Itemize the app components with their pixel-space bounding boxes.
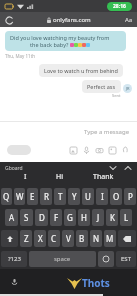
button[interactable]: U — [82, 188, 94, 205]
button[interactable]: V — [62, 230, 74, 247]
button[interactable]: Space — [29, 251, 96, 267]
staticText: J — [97, 212, 100, 223]
staticText: P — [128, 191, 133, 202]
staticText: Did you love watching my beauty from — [10, 34, 110, 41]
button[interactable]: J — [92, 209, 104, 226]
button[interactable]: C — [48, 230, 60, 247]
staticText: T — [58, 191, 63, 202]
button[interactable]: ?123 — [1, 251, 27, 267]
button[interactable]: Reload page — [3, 14, 15, 26]
button[interactable]: Camera — [95, 146, 104, 155]
button[interactable]: G — [64, 209, 76, 226]
staticText: ?123 — [8, 255, 21, 263]
staticText: E — [30, 191, 35, 202]
staticText: Z — [24, 233, 29, 244]
button[interactable]: E — [27, 188, 38, 205]
staticText: Sent — [112, 93, 121, 98]
button[interactable]: Type a message — [0, 128, 137, 136]
staticText: H — [81, 212, 87, 223]
staticText: Aa — [125, 16, 133, 24]
button[interactable]: Love to watch u from behind — [39, 64, 123, 77]
button[interactable]: W — [14, 188, 25, 205]
button[interactable]: Q — [1, 188, 12, 205]
staticText: onlyfans.com — [53, 16, 91, 24]
button[interactable]: Z — [20, 230, 32, 247]
staticText: Thank — [93, 172, 114, 182]
button[interactable]: H — [78, 209, 90, 226]
staticText: space — [54, 255, 71, 263]
staticText: 28:16 — [113, 3, 126, 10]
staticText: K — [110, 212, 115, 223]
button[interactable]: X — [34, 230, 46, 247]
button[interactable]: Did you love watching my beauty from — [5, 31, 126, 51]
staticText: L — [124, 212, 129, 223]
staticText: Perfect ass — [87, 83, 116, 90]
staticText: U — [85, 191, 91, 202]
button[interactable]: Photos — [108, 146, 117, 155]
button[interactable]: Hi — [50, 170, 69, 184]
staticText: Y — [72, 191, 77, 202]
staticText: S — [24, 212, 29, 223]
button[interactable]: I — [96, 188, 108, 205]
button[interactable]: Microphone — [82, 146, 91, 155]
button[interactable]: S — [20, 209, 33, 226]
staticText: Thu, May 11th — [5, 53, 36, 59]
button[interactable]: K — [106, 209, 118, 226]
staticText: Q — [3, 191, 10, 202]
button[interactable]: Backspace — [118, 230, 136, 247]
button[interactable]: onlyfans.com — [47, 16, 91, 24]
staticText: Gboard — [5, 165, 23, 172]
button[interactable]: A — [5, 209, 18, 226]
button[interactable]: Attach file — [121, 146, 130, 155]
staticText: G — [67, 212, 73, 223]
staticText: the back baby? — [30, 41, 70, 48]
button[interactable]: Perfect ass — [82, 80, 121, 93]
button[interactable]: O — [110, 188, 122, 205]
button[interactable]: N — [90, 230, 102, 247]
staticText: N — [93, 233, 100, 244]
staticText: R — [44, 191, 49, 202]
staticText: F — [54, 212, 59, 223]
staticText: M — [106, 233, 114, 244]
button[interactable]: Expand suggestions — [123, 163, 133, 173]
staticText: Love to watch u from behind — [44, 67, 118, 74]
button[interactable]: 28:16 — [107, 2, 132, 11]
button[interactable]: Shift — [1, 230, 18, 247]
button[interactable]: EST — [116, 251, 136, 267]
button[interactable]: T — [54, 188, 66, 205]
button[interactable]: I — [18, 170, 33, 184]
button[interactable]: Y — [68, 188, 80, 205]
button[interactable]: Emoji — [98, 251, 114, 267]
staticText: EST — [121, 255, 131, 263]
button[interactable]: D — [35, 209, 48, 226]
button[interactable]: F — [50, 209, 62, 226]
staticText: JR — [126, 86, 130, 91]
button[interactable]: M — [104, 230, 116, 247]
staticText: X — [38, 233, 43, 244]
button[interactable]: Sender avatar — [123, 84, 132, 93]
button[interactable]: Send message — [7, 145, 31, 155]
staticText: W — [16, 191, 24, 202]
staticText: V — [66, 233, 71, 244]
button[interactable]: L — [120, 209, 132, 226]
staticText: Hi — [56, 172, 63, 182]
button[interactable]: Text size options — [125, 16, 133, 24]
staticText: I — [24, 172, 27, 182]
staticText: I — [101, 191, 104, 202]
button[interactable]: Thank — [87, 170, 120, 184]
staticText: Thots — [82, 276, 110, 290]
button[interactable]: Voice input — [9, 277, 20, 288]
staticText: A — [9, 212, 15, 223]
button[interactable]: Gallery — [69, 146, 78, 155]
button[interactable]: P — [124, 188, 136, 205]
button[interactable]: Collapse suggestions — [108, 163, 118, 173]
button[interactable]: R — [40, 188, 52, 205]
staticText: C — [51, 233, 57, 244]
staticText: Type a message — [84, 128, 130, 136]
staticText: B — [79, 233, 85, 244]
staticText: D — [39, 212, 45, 223]
staticText: O — [113, 191, 120, 202]
button[interactable]: B — [76, 230, 88, 247]
